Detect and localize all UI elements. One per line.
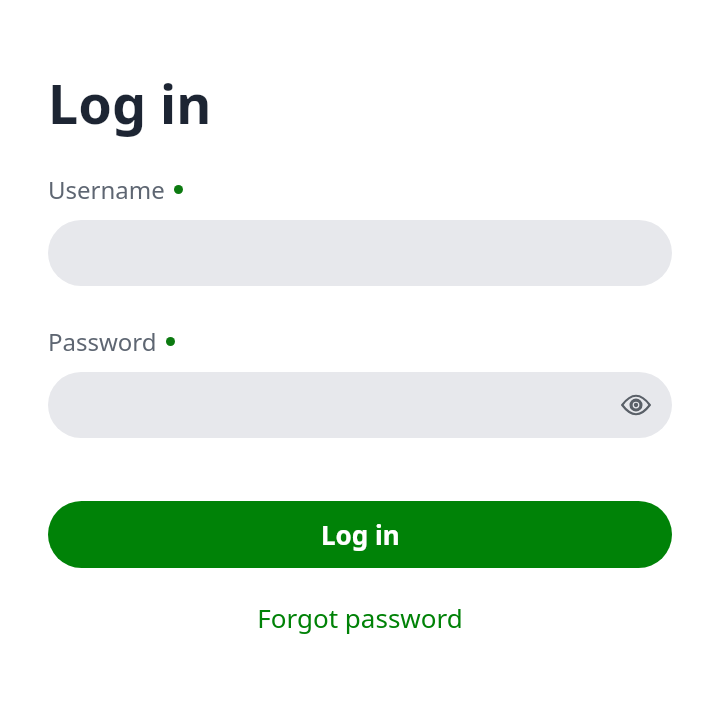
button[interactable]: Password field (48, 372, 672, 438)
staticText: Forgot password (257, 600, 463, 635)
button[interactable]: Log in (48, 501, 672, 568)
button[interactable]: Username field (48, 220, 672, 286)
button[interactable]: Forgot password (48, 600, 672, 635)
button[interactable]: Show password (614, 383, 658, 427)
staticText: Log in (321, 517, 400, 552)
staticText: Password (48, 325, 157, 358)
staticText: Username (48, 173, 165, 206)
staticText: Log in (48, 66, 212, 140)
